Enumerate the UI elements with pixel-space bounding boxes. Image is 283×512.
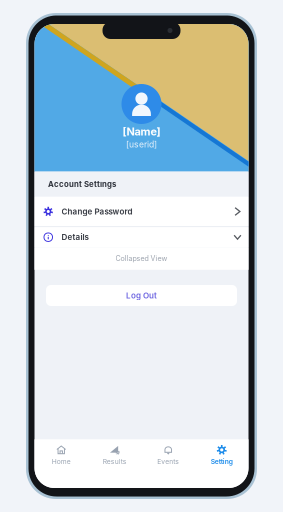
staticText: Account Settings (48, 179, 116, 189)
staticText: [userid] (126, 139, 157, 149)
button[interactable]: Change Password (34, 197, 248, 226)
button[interactable]: Home (34, 439, 88, 488)
staticText: Log Out (126, 291, 157, 300)
button[interactable]: Setting (195, 439, 248, 488)
staticText: Collapsed View (115, 254, 167, 263)
staticText: [Name] (122, 125, 160, 138)
staticText: Details (61, 232, 88, 242)
button[interactable]: Results (88, 439, 141, 488)
staticText: Setting (211, 458, 233, 466)
staticText: Change Password (61, 207, 132, 216)
staticText: Home (52, 458, 71, 466)
button[interactable]: Events (141, 439, 195, 488)
button[interactable]: Details (34, 227, 248, 247)
button[interactable]: Log Out (46, 285, 237, 306)
staticText: Events (157, 458, 179, 466)
staticText: Results (103, 458, 127, 466)
